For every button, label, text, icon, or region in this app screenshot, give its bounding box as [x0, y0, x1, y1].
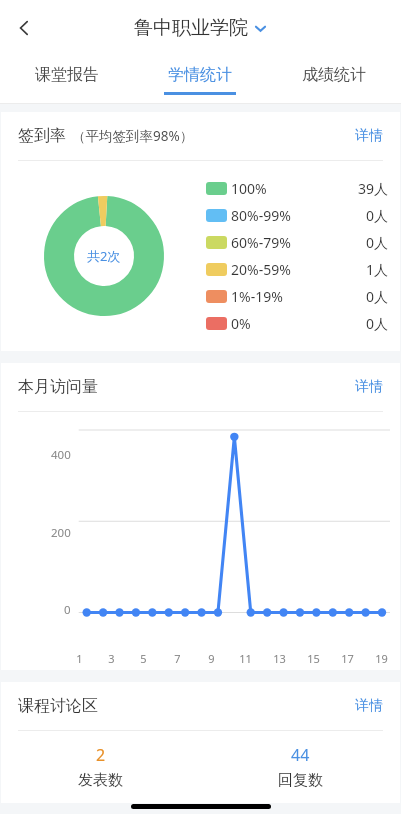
button[interactable]: 详情	[355, 378, 383, 396]
button[interactable]: Back	[0, 4, 48, 52]
staticText: 0	[64, 602, 71, 618]
button[interactable]: 2	[1, 731, 200, 803]
staticText: 20%-59%	[231, 260, 291, 279]
staticText: 签到率	[18, 126, 66, 146]
staticText: 9	[208, 651, 215, 666]
button[interactable]: 44	[200, 731, 400, 803]
staticText: 11	[239, 651, 252, 666]
staticText: 100%	[231, 179, 267, 198]
staticText: 鲁中职业学院	[134, 16, 248, 40]
staticText: 39人	[358, 179, 389, 198]
staticText: 0%	[231, 314, 251, 333]
staticText: 1	[76, 651, 83, 666]
staticText: 5	[140, 651, 147, 666]
staticText: 0人	[366, 233, 389, 252]
staticText: 1人	[366, 260, 389, 279]
staticText: 学情统计	[168, 65, 232, 85]
staticText: 0人	[366, 287, 389, 306]
staticText: 3	[108, 651, 115, 666]
button[interactable]: 学情统计	[133, 56, 267, 104]
staticText: 0人	[366, 206, 389, 225]
staticText: 1%-19%	[231, 287, 283, 306]
staticText: 发表数	[78, 771, 123, 790]
staticText: 44	[291, 744, 310, 766]
staticText: 课程讨论区	[18, 696, 98, 716]
staticText: 80%-99%	[231, 206, 291, 225]
button[interactable]: 课堂报告	[0, 56, 133, 104]
staticText: （平均签到率98%）	[72, 127, 194, 145]
staticText: 15	[307, 651, 320, 666]
staticText: 7	[174, 651, 181, 666]
staticText: 共2次	[87, 247, 121, 265]
staticText: 19	[375, 651, 388, 666]
staticText: 17	[341, 651, 354, 666]
staticText: 详情	[355, 127, 383, 145]
staticText: 400	[51, 447, 71, 463]
staticText: 详情	[355, 697, 383, 715]
staticText: 2	[96, 744, 106, 766]
button[interactable]: 成绩统计	[267, 56, 401, 104]
button[interactable]: 详情	[355, 697, 383, 715]
staticText: 回复数	[278, 771, 323, 790]
staticText: 成绩统计	[302, 65, 366, 85]
staticText: 详情	[355, 378, 383, 396]
staticText: 60%-79%	[231, 233, 291, 252]
button[interactable]: 详情	[355, 127, 383, 145]
staticText: 课堂报告	[35, 65, 99, 85]
staticText: 0人	[366, 314, 389, 333]
button[interactable]: 鲁中职业学院	[134, 16, 267, 40]
staticText: 本月访问量	[18, 377, 98, 397]
staticText: 200	[51, 525, 71, 541]
staticText: 13	[273, 651, 286, 666]
